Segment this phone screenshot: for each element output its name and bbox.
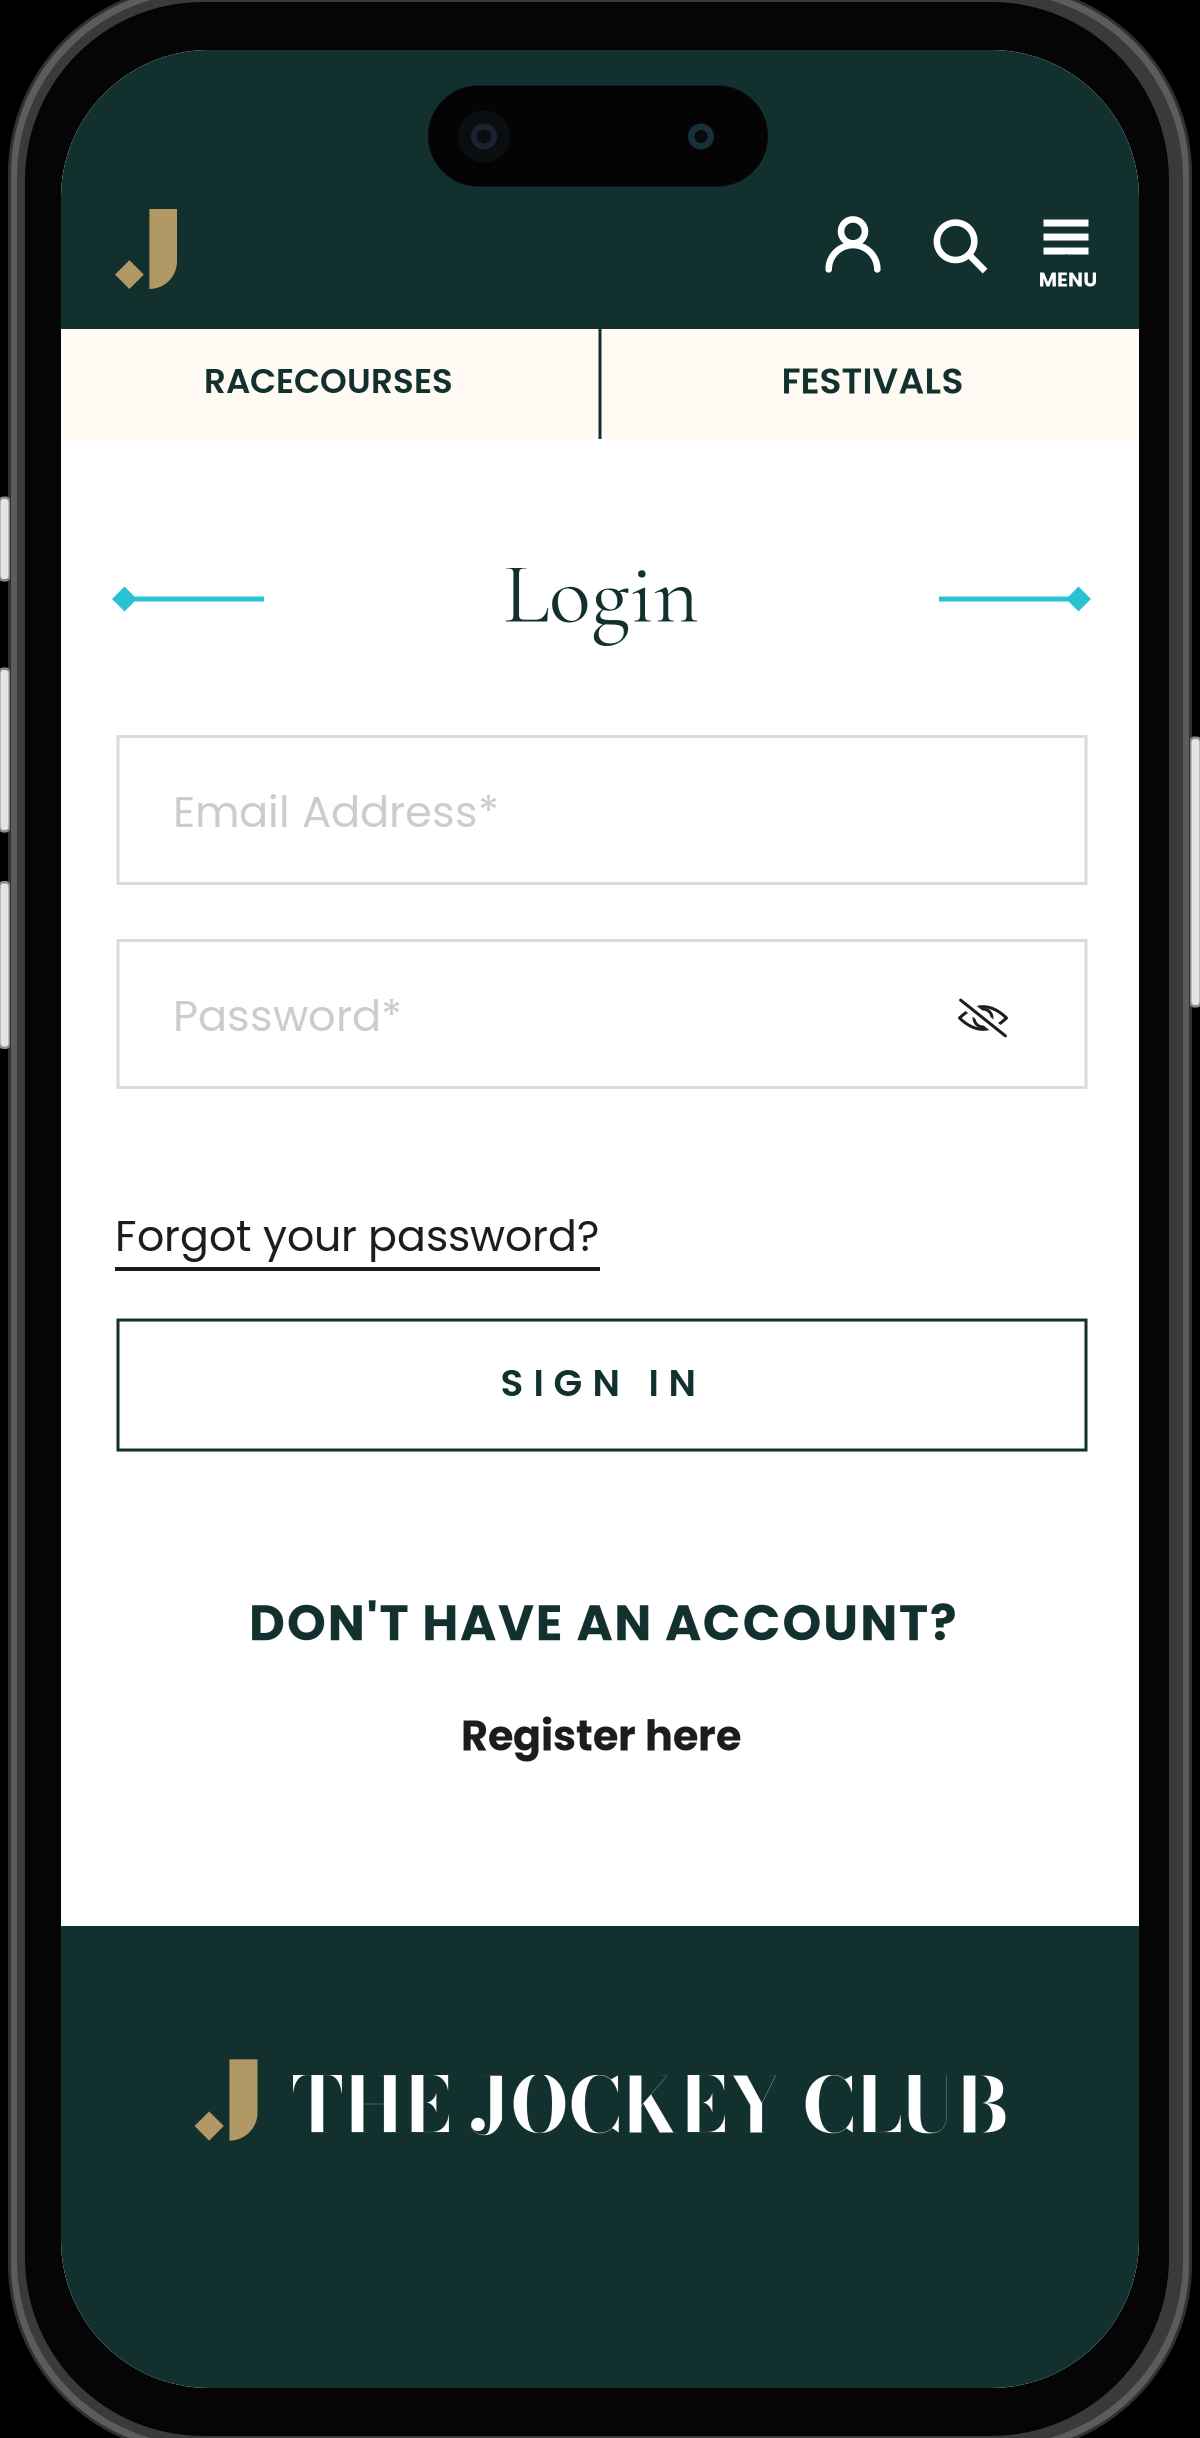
staticText: SIGN IN [500, 1357, 695, 1409]
staticText: THE JOCKEY CLUB [291, 2047, 1008, 2163]
staticText: MENU [1039, 265, 1097, 293]
staticText: DON'T HAVE AN ACCOUNT? [249, 1588, 957, 1658]
staticText: Password* [173, 986, 402, 1046]
button[interactable]: Account [801, 193, 905, 297]
button[interactable]: The Jockey Club home [76, 179, 216, 319]
button[interactable]: Register here [381, 1696, 821, 1776]
staticText: RACECOURSES [204, 357, 453, 405]
staticText: Login [503, 541, 699, 646]
staticText: Register here [461, 1707, 741, 1765]
button[interactable]: RACECOURSES [59, 326, 598, 436]
button[interactable]: Show password [929, 964, 1037, 1072]
staticText: Email Address* [173, 782, 499, 842]
button[interactable]: Search [909, 195, 1013, 299]
button[interactable]: FESTIVALS [603, 326, 1142, 436]
button[interactable]: SIGN IN [116, 1318, 1087, 1451]
staticText: Forgot your password? [115, 1206, 599, 1266]
staticText: FESTIVALS [781, 356, 963, 406]
button[interactable]: Menu [1016, 197, 1116, 309]
button[interactable]: Forgot your password? [115, 1203, 635, 1273]
